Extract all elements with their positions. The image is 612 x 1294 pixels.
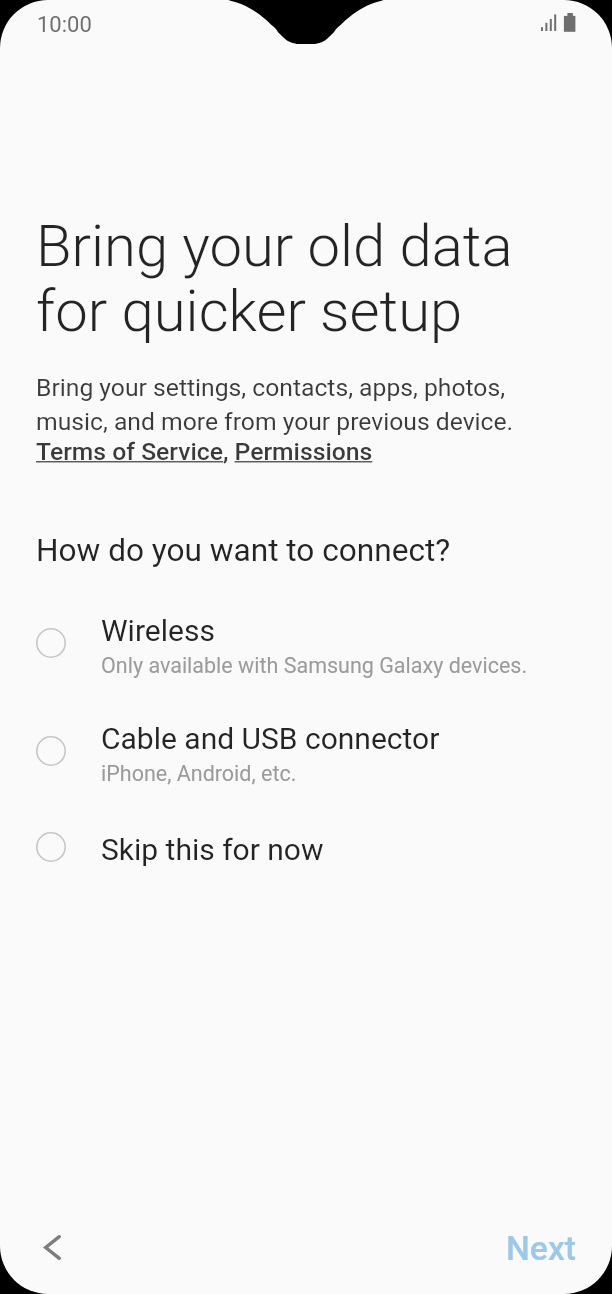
button[interactable]: Back <box>22 1217 82 1277</box>
staticText: Wireless <box>101 613 215 648</box>
button[interactable]: Next <box>498 1221 584 1276</box>
staticText: Next <box>506 1229 576 1268</box>
staticText: Bring your settings, contacts, apps, pho… <box>36 373 514 436</box>
staticText: Terms of Service, Permissions <box>36 437 373 466</box>
staticText: 10:00 <box>37 12 92 38</box>
staticText: Cable and USB connector <box>101 721 440 756</box>
button[interactable]: Cable and USB connector <box>0 715 612 797</box>
staticText: Skip this for now <box>101 832 324 867</box>
staticText: Only available with Samsung Galaxy devic… <box>101 653 528 678</box>
staticText: How do you want to connect? <box>36 532 451 569</box>
button[interactable]: Skip this for now <box>0 811 612 869</box>
staticText: Bring your old data for quicker setup <box>36 212 513 345</box>
button[interactable]: Wireless <box>0 607 612 689</box>
staticText: iPhone, Android, etc. <box>101 761 297 786</box>
